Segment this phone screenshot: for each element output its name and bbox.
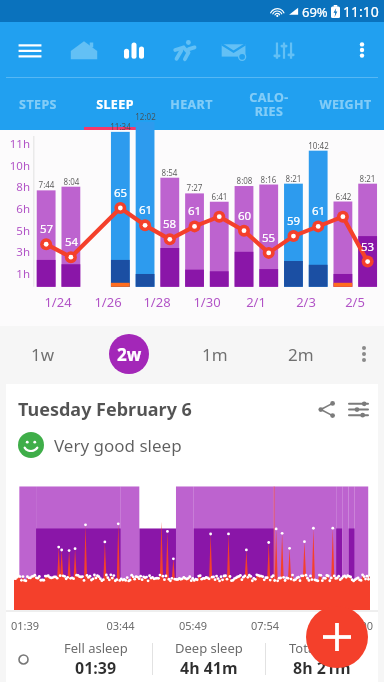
button[interactable]: 1m	[195, 334, 235, 374]
staticText: 09:00	[301, 618, 373, 633]
staticText: 7:44	[29, 179, 64, 190]
staticText: Total sleep	[289, 639, 355, 657]
staticText: 57	[29, 221, 64, 237]
staticText: 53	[350, 239, 384, 255]
staticText: 1w	[31, 343, 55, 366]
staticText: SLEEP	[96, 96, 134, 113]
staticText: 8h 21m	[293, 657, 351, 679]
button[interactable]: SLEEP	[76, 78, 153, 130]
staticText: 6:41	[202, 191, 237, 202]
button[interactable]: Add	[306, 606, 368, 668]
button[interactable]: Deep sleep	[153, 639, 265, 679]
button[interactable]: Total sleep	[266, 639, 378, 679]
button[interactable]: 2m	[281, 334, 321, 374]
staticText: 01:39	[75, 657, 117, 679]
button[interactable]: Home	[62, 28, 106, 72]
button[interactable]: CALO- RIES	[230, 78, 307, 130]
staticText: 8h	[2, 179, 30, 195]
staticText: 6:42	[326, 191, 361, 202]
staticText: 8:08	[227, 175, 262, 186]
button[interactable]: More	[344, 326, 384, 382]
staticText: 8:04	[54, 176, 89, 187]
button[interactable]: Menu	[8, 28, 52, 72]
staticText: 61	[177, 203, 212, 219]
staticText: 07:54	[229, 618, 301, 633]
staticText: 69%	[302, 3, 328, 21]
button[interactable]: Fell asleep	[40, 639, 152, 679]
staticText: 59	[276, 213, 311, 229]
staticText: 12:02	[128, 111, 163, 122]
staticText: CALO- RIES	[249, 89, 289, 120]
staticText: 05:49	[157, 618, 229, 633]
staticText: 11:34	[103, 121, 138, 132]
staticText: 61	[301, 203, 336, 219]
staticText: STEPS	[19, 96, 57, 113]
staticText: 58	[152, 216, 187, 232]
staticText: 11h	[2, 136, 30, 152]
staticText: 55	[251, 230, 286, 246]
staticText: 4h 41m	[180, 657, 238, 679]
staticText: 1/26	[81, 293, 135, 311]
button[interactable]: Share	[310, 393, 342, 425]
staticText: 2/5	[328, 293, 382, 311]
staticText: 8:54	[152, 167, 187, 178]
staticText: WEIGHT	[319, 96, 372, 113]
staticText: 8:16	[251, 174, 286, 185]
staticText: 10:42	[301, 140, 336, 151]
staticText: HEART	[170, 96, 213, 113]
button[interactable]: Settings	[342, 393, 374, 425]
staticText: 65	[103, 185, 138, 201]
staticText: 7:27	[177, 182, 212, 193]
staticText: 5h	[2, 223, 30, 239]
staticText: 10h	[2, 158, 30, 174]
staticText: 2m	[288, 343, 314, 366]
button[interactable]: Messages	[212, 28, 256, 72]
staticText: 01:39	[11, 618, 84, 633]
button[interactable]: 1w	[23, 334, 63, 374]
button[interactable]: Statistics	[112, 28, 156, 72]
staticText: 2/3	[279, 293, 333, 311]
button[interactable]: More options	[342, 30, 382, 70]
staticText: 3h	[2, 244, 30, 260]
staticText: 2w	[117, 343, 142, 366]
staticText: Tuesday February 6	[18, 397, 310, 422]
staticText: 1/30	[180, 293, 234, 311]
staticText: 1/24	[31, 293, 85, 311]
button[interactable]: STEPS	[0, 78, 76, 130]
staticText: 1/28	[130, 293, 184, 311]
staticText: Very good sleep	[54, 434, 182, 457]
staticText: 03:44	[84, 618, 157, 633]
button[interactable]: 2w	[109, 334, 149, 374]
button[interactable]: Activity	[162, 28, 206, 72]
button[interactable]: WEIGHT	[307, 78, 384, 130]
button[interactable]: Settings	[262, 28, 306, 72]
staticText: 6h	[2, 201, 30, 217]
staticText: 8:21	[350, 173, 384, 184]
staticText: Fell asleep	[64, 639, 128, 657]
staticText: 54	[54, 234, 89, 250]
staticText: 61	[128, 202, 163, 218]
staticText: 11:10	[343, 2, 379, 21]
button[interactable]: HEART	[153, 78, 230, 130]
staticText: 1h	[2, 266, 30, 282]
staticText: 1m	[202, 343, 228, 366]
staticText: 60	[227, 208, 262, 224]
staticText: 8:21	[276, 173, 311, 184]
staticText: Deep sleep	[175, 639, 243, 657]
staticText: 2/1	[229, 293, 283, 311]
